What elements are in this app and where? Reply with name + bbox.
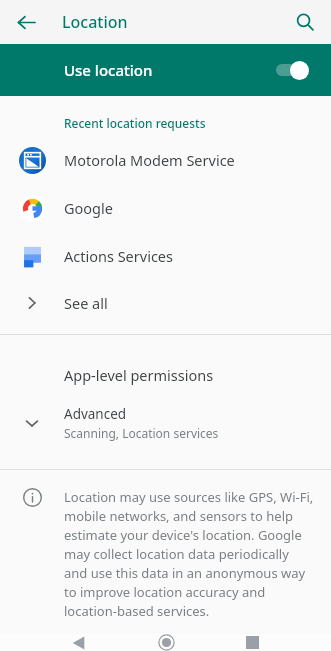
staticText: Scanning, Location services: [64, 425, 219, 441]
staticText: Location may use sources like GPS, Wi-Fi…: [64, 488, 315, 620]
staticText: Location: [62, 11, 128, 33]
button[interactable]: Recent apps: [235, 634, 269, 651]
button[interactable]: Motorola Modem Service: [0, 136, 331, 184]
button[interactable]: App-level permissions: [0, 353, 331, 397]
staticText: Google: [64, 198, 113, 218]
staticText: Recent location requests: [64, 115, 206, 131]
button[interactable]: See all: [0, 280, 331, 326]
button[interactable]: Google: [0, 184, 331, 232]
button[interactable]: Advanced: [0, 397, 331, 449]
button[interactable]: Back: [8, 4, 44, 40]
button[interactable]: Search: [287, 4, 323, 40]
button[interactable]: Actions Services: [0, 232, 331, 280]
button[interactable]: Home: [149, 634, 183, 651]
button[interactable]: Back: [62, 634, 96, 651]
staticText: Advanced: [64, 405, 127, 423]
staticText: Motorola Modem Service: [64, 150, 235, 170]
button[interactable]: Use location: [0, 44, 331, 96]
staticText: See all: [64, 293, 108, 313]
staticText: Actions Services: [64, 246, 173, 266]
staticText: App-level permissions: [64, 365, 214, 385]
staticText: Use location: [64, 60, 153, 80]
